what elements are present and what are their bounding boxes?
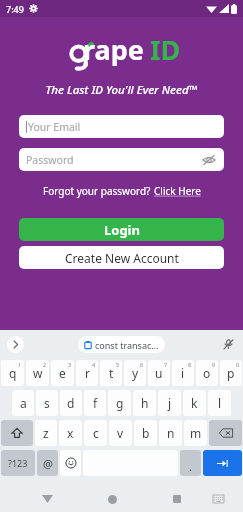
button[interactable]: t	[100, 360, 122, 386]
button[interactable]: r	[76, 360, 98, 386]
staticText: 7	[164, 361, 168, 368]
staticText: o	[203, 365, 211, 381]
staticText: Password	[26, 153, 74, 167]
staticText: e	[59, 365, 66, 381]
button[interactable]: @	[37, 450, 58, 476]
button[interactable]: z	[35, 420, 57, 446]
staticText: s	[44, 395, 50, 411]
staticText: u	[155, 365, 163, 381]
button[interactable]: Create New Account	[19, 246, 224, 269]
staticText: q	[9, 365, 17, 381]
button[interactable]: .	[180, 450, 201, 476]
button[interactable]: s	[36, 390, 58, 416]
button[interactable]: g	[108, 390, 131, 416]
button[interactable]: x	[59, 420, 82, 446]
button[interactable]: q	[1, 360, 24, 386]
button[interactable]: h	[133, 390, 156, 416]
staticText: 0	[236, 361, 240, 368]
staticText: 3	[68, 361, 72, 368]
button[interactable]: Recent apps	[166, 488, 188, 510]
button[interactable]: a	[12, 390, 34, 416]
staticText: 7:49	[6, 3, 24, 15]
staticText: y	[132, 365, 139, 381]
button[interactable]: Emoji	[60, 450, 81, 476]
staticText: 8	[188, 361, 192, 368]
staticText: i	[181, 365, 185, 381]
staticText: .	[189, 459, 192, 474]
button[interactable]: j	[158, 390, 181, 416]
button[interactable]: o	[196, 360, 218, 386]
button[interactable]: Next field	[203, 450, 242, 476]
staticText: m	[190, 425, 202, 441]
button[interactable]: b	[134, 420, 157, 446]
button[interactable]: Password	[19, 148, 224, 171]
staticText: f	[93, 395, 98, 411]
staticText: rape	[83, 31, 144, 68]
staticText: g	[116, 395, 124, 411]
staticText: a	[20, 395, 27, 411]
staticText: d	[67, 395, 75, 411]
staticText: k	[191, 395, 198, 411]
staticText: 9	[212, 361, 216, 368]
button[interactable]: w	[26, 360, 49, 386]
button[interactable]: Login	[19, 218, 224, 241]
button[interactable]: Expand toolbar	[7, 336, 24, 353]
button[interactable]: const transac…	[78, 336, 165, 353]
button[interactable]: Back	[36, 488, 58, 510]
staticText: j	[168, 395, 172, 411]
staticText: z	[43, 425, 49, 441]
staticText: ID	[150, 31, 181, 68]
staticText: Click Here	[154, 184, 201, 198]
button[interactable]: y	[124, 360, 146, 386]
staticText: l	[218, 395, 222, 411]
button[interactable]: v	[109, 420, 132, 446]
button[interactable]: Show password	[201, 152, 217, 168]
staticText: Your Email	[28, 120, 81, 134]
button[interactable]: Switch keyboard	[207, 488, 229, 510]
staticText: 2	[43, 361, 47, 368]
staticText: @	[43, 456, 53, 471]
staticText: n	[167, 425, 175, 441]
button[interactable]: d	[60, 390, 82, 416]
staticText: r	[85, 365, 90, 381]
button[interactable]: f	[84, 390, 106, 416]
staticText: The Last ID You'll Ever Need™	[45, 82, 198, 98]
button[interactable]: Click Here	[154, 184, 201, 198]
staticText: x	[67, 425, 74, 441]
staticText: 6	[140, 361, 144, 368]
button[interactable]: i	[172, 360, 194, 386]
button[interactable]: e	[51, 360, 74, 386]
staticText: 1	[18, 361, 22, 368]
staticText: v	[117, 425, 124, 441]
button[interactable]: l	[208, 390, 231, 416]
button[interactable]: Shift	[1, 420, 33, 446]
staticText: Forgot your password?	[43, 184, 154, 198]
button[interactable]: m	[184, 420, 207, 446]
staticText: Login	[104, 221, 140, 239]
staticText: Create New Account	[65, 250, 179, 266]
button[interactable]: u	[148, 360, 170, 386]
button[interactable]: k	[183, 390, 206, 416]
staticText: 5	[116, 361, 120, 368]
staticText: t	[109, 365, 114, 381]
staticText: w	[33, 365, 43, 381]
button[interactable]: Backspace	[209, 420, 242, 446]
staticText: c	[93, 425, 99, 441]
staticText: 4	[92, 361, 96, 368]
button[interactable]: p	[220, 360, 242, 386]
button[interactable]: n	[159, 420, 182, 446]
staticText: b	[142, 425, 150, 441]
button[interactable]: ?123	[1, 450, 35, 476]
button[interactable]: Home	[101, 488, 123, 510]
staticText: p	[227, 365, 235, 381]
button[interactable]: Voice input off	[220, 336, 236, 352]
staticText: const transac…	[95, 339, 159, 351]
button[interactable]: c	[84, 420, 107, 446]
staticText: h	[141, 395, 149, 411]
staticText: ?123	[8, 457, 28, 469]
button[interactable]: Your Email	[19, 115, 224, 138]
